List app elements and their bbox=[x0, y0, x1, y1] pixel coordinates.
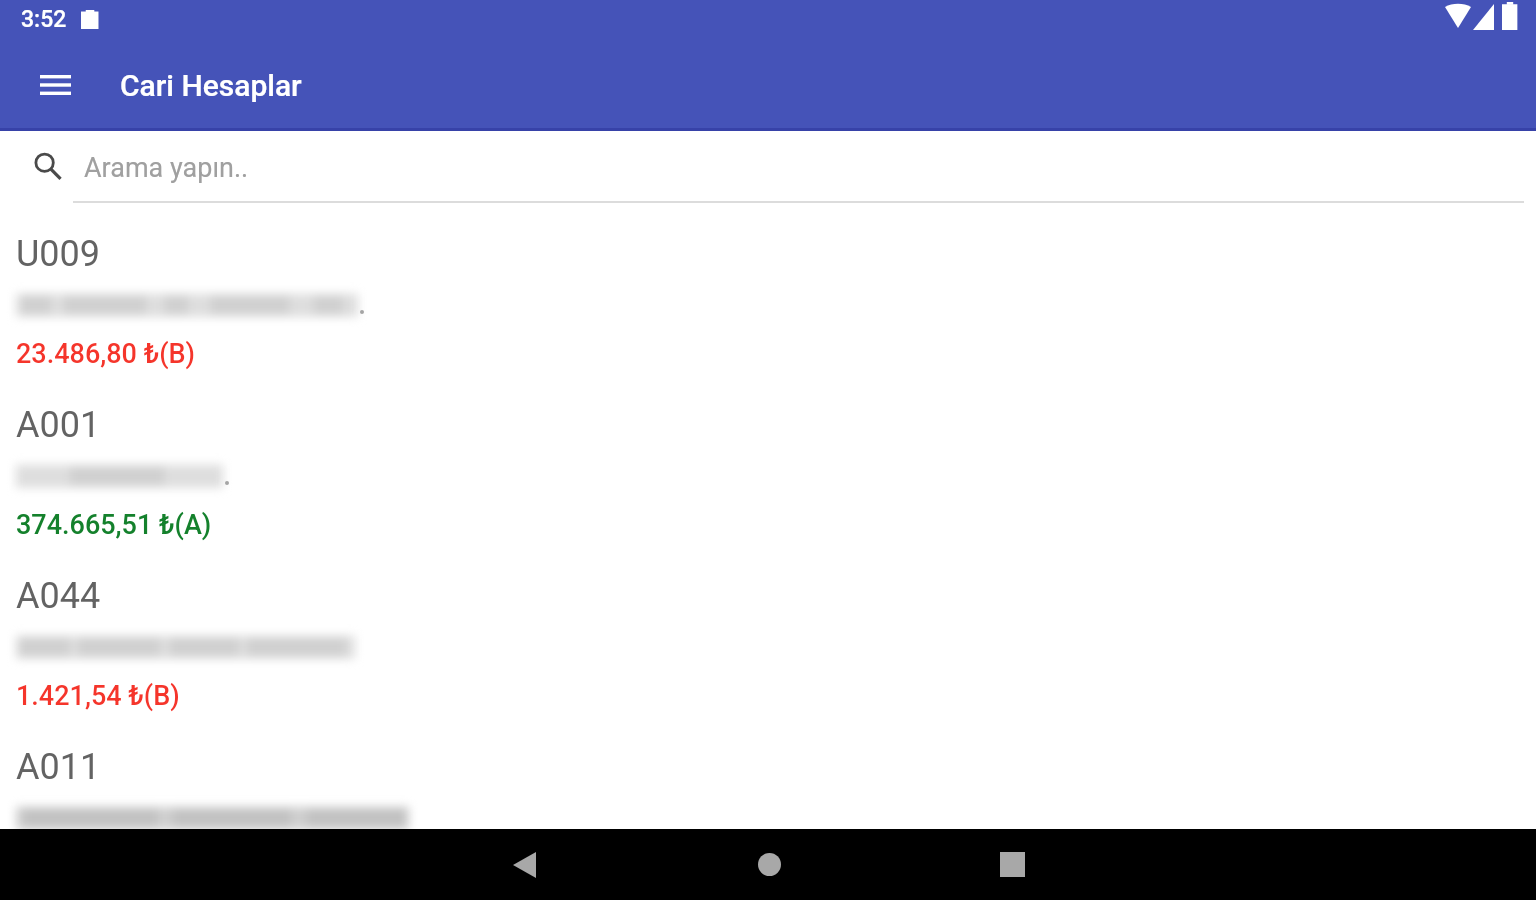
button[interactable]: Recent apps bbox=[977, 829, 1047, 900]
staticText: 3:52 bbox=[21, 6, 67, 33]
staticText: Cari Hesaplar bbox=[120, 68, 302, 103]
button[interactable]: Home bbox=[734, 829, 804, 900]
button[interactable]: A001 bbox=[0, 404, 1536, 575]
staticText: 1.421,54 ₺(B) bbox=[16, 680, 180, 712]
button[interactable]: A011 bbox=[0, 746, 1536, 829]
staticText: A011 bbox=[16, 746, 101, 788]
button[interactable]: A044 bbox=[0, 575, 1536, 746]
staticText: A044 bbox=[16, 575, 101, 617]
button[interactable]: Back bbox=[489, 829, 559, 900]
button[interactable]: Open navigation menu bbox=[23, 60, 87, 110]
button[interactable]: Arama yapın.. bbox=[0, 131, 1536, 211]
staticText: A001 bbox=[16, 404, 101, 446]
staticText: U009 bbox=[16, 233, 101, 275]
button[interactable]: U009 bbox=[0, 233, 1536, 404]
staticText: 23.486,80 ₺(B) bbox=[16, 338, 196, 370]
staticText: Arama yapın.. bbox=[84, 152, 249, 184]
staticText: 374.665,51 ₺(A) bbox=[16, 509, 212, 541]
